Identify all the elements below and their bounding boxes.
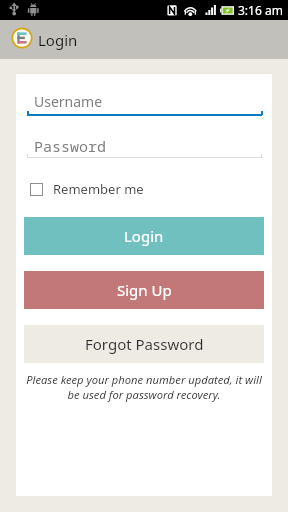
button[interactable]: Forgot Password: [24, 325, 264, 363]
button[interactable]: Sign Up: [24, 271, 264, 309]
staticText: Password: [34, 136, 107, 156]
staticText: Login: [38, 30, 78, 50]
other: App logo: [11, 27, 33, 49]
staticText: Login: [124, 226, 164, 246]
staticText: Please keep your phone number updated, i…: [24, 372, 264, 402]
button[interactable]: Login: [24, 217, 264, 255]
staticText: Username: [34, 92, 103, 111]
staticText: Forgot Password: [85, 334, 204, 354]
staticText: 3:16 am: [238, 2, 283, 18]
button[interactable]: Remember me: [26, 180, 146, 198]
staticText: Remember me: [53, 180, 144, 198]
staticText: Sign Up: [117, 280, 172, 300]
